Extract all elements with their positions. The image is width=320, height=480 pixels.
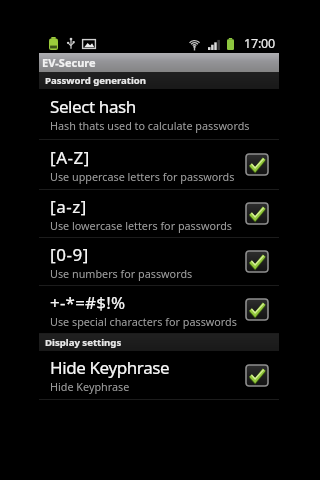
button[interactable]: Checkbox, checked: [245, 250, 269, 273]
staticText: Hash thats used to calculate passwords: [50, 118, 250, 133]
staticText: 17:00: [244, 35, 275, 52]
staticText: [0-9]: [50, 243, 89, 266]
button[interactable]: [A-Z]: [39, 140, 279, 190]
button[interactable]: Checkbox, checked: [245, 298, 269, 321]
staticText: [A-Z]: [50, 146, 90, 169]
button[interactable]: Checkbox, checked: [245, 202, 269, 225]
staticText: Hide Keyphrase: [50, 356, 170, 379]
staticText: Password generation: [45, 74, 147, 87]
button[interactable]: +-*=#$!%: [39, 286, 279, 334]
staticText: Display settings: [45, 336, 122, 349]
button[interactable]: Hide Keyphrase: [39, 351, 279, 400]
button[interactable]: Checkbox, checked: [245, 364, 269, 387]
staticText: Use special characters for passwords: [50, 314, 237, 329]
staticText: Use numbers for passwords: [50, 266, 193, 281]
staticText: Select hash: [50, 95, 136, 118]
staticText: Hide Keyphrase: [50, 379, 130, 394]
button[interactable]: Select hash: [39, 89, 279, 140]
staticText: Use lowercase letters for passwords: [50, 218, 233, 233]
staticText: Use uppercase letters for passwords: [50, 169, 235, 184]
button[interactable]: Checkbox, checked: [245, 153, 269, 176]
staticText: [a-z]: [50, 195, 87, 218]
button[interactable]: [a-z]: [39, 190, 279, 238]
staticText: +-*=#$!%: [50, 291, 126, 314]
staticText: EV-Secure: [42, 55, 96, 70]
button[interactable]: [0-9]: [39, 238, 279, 286]
